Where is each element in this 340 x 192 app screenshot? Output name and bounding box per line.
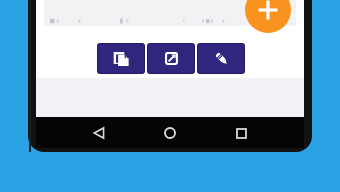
button[interactable]: Home [159, 122, 181, 144]
button[interactable]: Open [148, 44, 194, 73]
button[interactable] [44, 0, 296, 26]
button[interactable]: Recent apps [230, 122, 252, 144]
button[interactable]: Back [88, 122, 110, 144]
button[interactable]: Duplicate [98, 44, 144, 73]
button[interactable]: Highlight [198, 44, 244, 73]
button[interactable]: Add [245, 0, 291, 33]
